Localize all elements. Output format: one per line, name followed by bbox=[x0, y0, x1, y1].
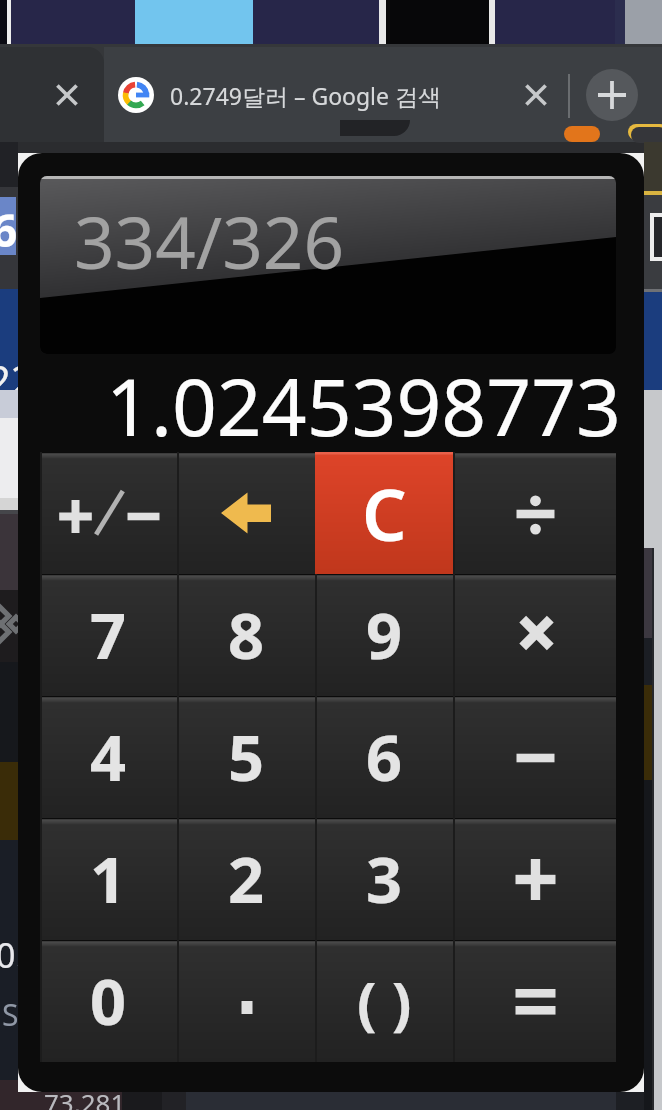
staticText: 8 bbox=[228, 592, 265, 678]
button[interactable]: Minus bbox=[453, 696, 616, 818]
staticText: 0. bbox=[0, 932, 25, 978]
button[interactable]: New tab bbox=[586, 69, 638, 121]
button[interactable]: Divide bbox=[453, 452, 616, 574]
staticText: 73,281 bbox=[44, 1085, 126, 1110]
staticText: 1.0245398773 bbox=[106, 352, 621, 459]
staticText: 7 bbox=[90, 592, 127, 678]
staticText: 0.2749달러 – Google 검색 bbox=[170, 80, 442, 111]
staticText: 6 bbox=[0, 200, 18, 260]
button[interactable]: Plus bbox=[453, 818, 616, 940]
button[interactable]: Backspace bbox=[177, 452, 315, 574]
button[interactable]: Close tab bbox=[52, 80, 82, 110]
button[interactable]: 0 bbox=[40, 940, 177, 1062]
staticText: 5 bbox=[228, 714, 265, 800]
staticText: 9 bbox=[366, 592, 403, 678]
button[interactable]: Decimal point bbox=[177, 940, 315, 1062]
staticText: 334/326 bbox=[74, 193, 345, 290]
staticText: 2 bbox=[228, 836, 265, 922]
button[interactable]: 5 bbox=[177, 696, 315, 818]
staticText: S bbox=[2, 994, 19, 1035]
button[interactable]: C bbox=[315, 452, 453, 574]
staticText: C bbox=[362, 466, 407, 561]
staticText: 0 bbox=[90, 958, 127, 1044]
button[interactable]: 7 bbox=[40, 574, 177, 696]
staticText: 1 bbox=[90, 836, 127, 922]
staticText: ( ) bbox=[357, 962, 412, 1041]
staticText: 3 bbox=[366, 836, 403, 922]
button[interactable]: Multiply bbox=[453, 574, 616, 696]
button[interactable]: 1 bbox=[40, 818, 177, 940]
button[interactable]: 6 bbox=[315, 696, 453, 818]
button[interactable]: Plus minus bbox=[40, 452, 177, 574]
button[interactable]: 9 bbox=[315, 574, 453, 696]
button[interactable]: ( ) bbox=[315, 940, 453, 1062]
button[interactable]: 4 bbox=[40, 696, 177, 818]
button[interactable]: 3 bbox=[315, 818, 453, 940]
button[interactable]: Close tab bbox=[521, 80, 551, 110]
staticText: 4 bbox=[90, 714, 127, 800]
staticText: 6 bbox=[366, 714, 403, 800]
button[interactable]: 2 bbox=[177, 818, 315, 940]
button[interactable]: 8 bbox=[177, 574, 315, 696]
button[interactable]: Equals bbox=[453, 940, 616, 1062]
staticText: 22 bbox=[0, 352, 34, 406]
